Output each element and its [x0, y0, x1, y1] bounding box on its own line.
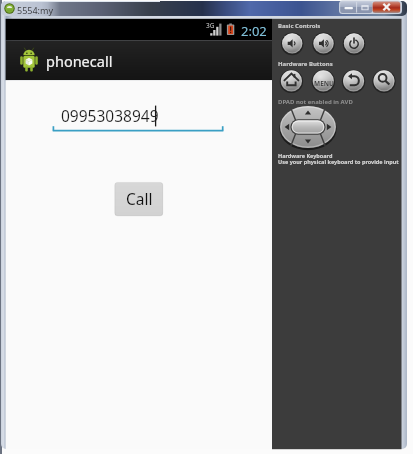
- staticText: 2:02: [241, 22, 267, 40]
- staticText: 3G: [206, 21, 215, 30]
- staticText: MENU: [314, 79, 334, 88]
- staticText: Hardware Keyboard: [278, 152, 333, 159]
- staticText: Hardware Buttons: [278, 60, 333, 68]
- staticText: 09953038949: [61, 105, 159, 126]
- staticText: Use your physical keyboard to provide in…: [278, 158, 399, 165]
- button[interactable]: Call: [115, 182, 163, 215]
- staticText: phonecall: [46, 51, 113, 71]
- staticText: DPAD not enabled in AVD: [278, 98, 353, 106]
- staticText: 5554:my: [17, 4, 54, 16]
- staticText: Basic Controls: [278, 22, 321, 30]
- staticText: Call: [126, 188, 153, 209]
